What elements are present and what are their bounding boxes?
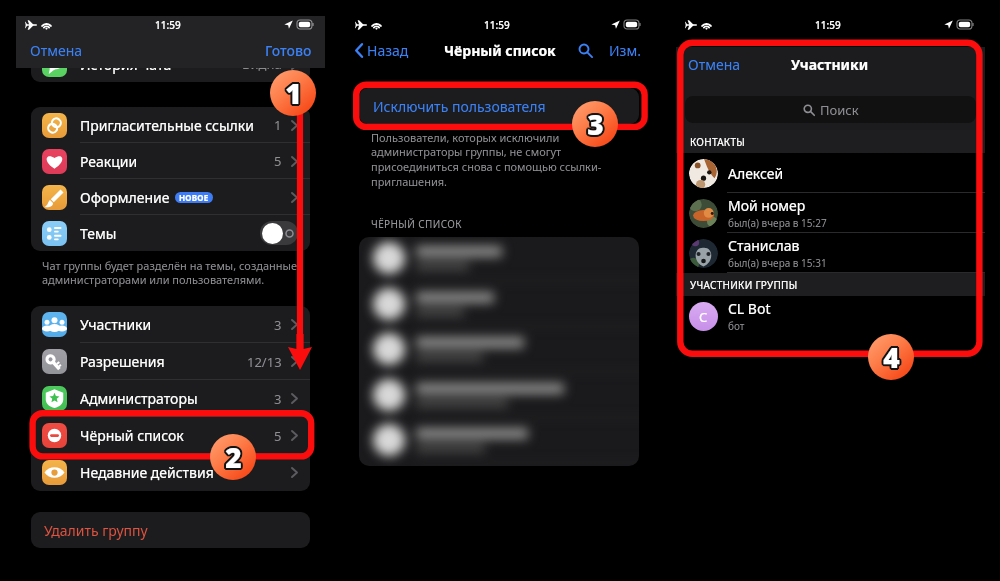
staticText: 1 bbox=[285, 75, 302, 113]
staticText: Станислав bbox=[728, 236, 800, 255]
staticText: 2 bbox=[223, 437, 240, 475]
staticText: КОНТАКТЫ bbox=[690, 135, 746, 149]
staticText: 4 bbox=[883, 337, 900, 375]
button[interactable]: Станислав bbox=[676, 233, 985, 273]
staticText: 4 bbox=[884, 339, 901, 377]
staticText: 1 bbox=[284, 74, 301, 112]
button[interactable]: Разрешения bbox=[31, 343, 310, 380]
button[interactable]: Чёрный список bbox=[31, 417, 310, 454]
staticText: Алексей bbox=[728, 164, 784, 183]
staticText: 1 bbox=[286, 75, 303, 113]
staticText: 3 bbox=[587, 103, 604, 141]
staticText: 3 bbox=[585, 104, 602, 142]
button[interactable]: История чата bbox=[31, 46, 310, 82]
staticText: 1 bbox=[287, 73, 304, 111]
staticText: 11:59 bbox=[815, 18, 841, 32]
staticText: 2 bbox=[224, 440, 241, 478]
staticText: 4 bbox=[883, 339, 900, 377]
staticText: 1 bbox=[285, 72, 302, 110]
staticText: Отмена bbox=[688, 55, 741, 74]
staticText: 1 bbox=[286, 76, 303, 114]
staticText: 1 bbox=[285, 74, 302, 112]
button[interactable]: Поиск bbox=[576, 41, 595, 60]
staticText: 2 bbox=[227, 438, 244, 476]
staticText: 3 bbox=[586, 104, 603, 142]
staticText: 4 bbox=[884, 340, 901, 378]
staticText: Участники bbox=[80, 315, 152, 334]
staticText: 1 bbox=[286, 73, 303, 111]
staticText: был(а) вчера в 15:31 bbox=[728, 256, 827, 270]
button[interactable]: Поиск bbox=[685, 96, 976, 123]
staticText: Темы bbox=[80, 224, 117, 243]
button[interactable]: Изм. bbox=[609, 41, 641, 60]
staticText: 3 bbox=[588, 107, 605, 145]
button[interactable]: Недавние действия bbox=[31, 454, 310, 491]
staticText: 3 bbox=[585, 105, 602, 143]
button[interactable]: Темы bbox=[31, 215, 310, 251]
button[interactable]: Назад bbox=[355, 41, 409, 60]
button[interactable]: C bbox=[676, 296, 985, 336]
staticText: 2 bbox=[226, 436, 243, 474]
staticText: 1 bbox=[283, 73, 300, 111]
staticText: Пригласительные ссылки bbox=[80, 116, 254, 135]
staticText: 2 bbox=[227, 437, 244, 475]
staticText: 3 bbox=[589, 105, 606, 143]
staticText: 4 bbox=[884, 338, 901, 376]
staticText: 4 bbox=[881, 337, 898, 375]
staticText: 11:59 bbox=[155, 18, 181, 32]
staticText: 3 bbox=[274, 390, 282, 408]
staticText: Поиск bbox=[820, 101, 859, 119]
staticText: 2 bbox=[225, 439, 242, 477]
staticText: 3 bbox=[586, 106, 603, 144]
staticText: 3 bbox=[587, 104, 604, 142]
staticText: НОВОЕ bbox=[179, 192, 209, 203]
staticText: CL Bot bbox=[728, 299, 771, 318]
button[interactable]: Удалить группу bbox=[31, 512, 310, 548]
button[interactable]: Администраторы bbox=[31, 380, 310, 417]
button[interactable]: Мой номер bbox=[676, 193, 985, 233]
staticText: бот bbox=[728, 319, 745, 333]
staticText: 3 bbox=[588, 105, 605, 143]
button[interactable] bbox=[260, 221, 298, 245]
staticText: 4 bbox=[881, 338, 898, 376]
staticText: 3 bbox=[586, 107, 603, 145]
staticText: 1 bbox=[284, 72, 301, 110]
staticText: 1 bbox=[274, 116, 282, 134]
staticText: 3 bbox=[588, 103, 605, 141]
button[interactable]: Пригласительные ссылки bbox=[31, 107, 310, 143]
staticText: 3 bbox=[587, 107, 604, 145]
staticText: Исключить пользователя bbox=[373, 97, 546, 116]
staticText: 3 bbox=[586, 105, 603, 143]
staticText: 1 bbox=[285, 73, 302, 111]
staticText: Участники bbox=[791, 55, 869, 74]
button[interactable]: Отмена bbox=[30, 41, 83, 60]
staticText: Изм. bbox=[609, 41, 641, 60]
staticText: 2 bbox=[224, 437, 241, 475]
button[interactable]: Исключить пользователя bbox=[359, 88, 639, 124]
staticText: 3 bbox=[589, 106, 606, 144]
staticText: 2 bbox=[223, 438, 240, 476]
staticText: 1 bbox=[286, 74, 303, 112]
staticText: 12/13 bbox=[247, 353, 282, 371]
staticText: 3 bbox=[585, 106, 602, 144]
staticText: 3 bbox=[589, 104, 606, 142]
button[interactable]: Оформление bbox=[31, 179, 310, 215]
staticText: 4 bbox=[884, 337, 901, 375]
staticText: 2 bbox=[223, 439, 240, 477]
button[interactable]: Отмена bbox=[688, 55, 741, 74]
button[interactable]: Реакции bbox=[31, 143, 310, 179]
staticText: 2 bbox=[224, 439, 241, 477]
staticText: Назад bbox=[367, 41, 409, 60]
button[interactable]: Алексей bbox=[676, 153, 985, 193]
button[interactable]: Участники bbox=[31, 306, 310, 343]
staticText: 4 bbox=[882, 336, 899, 374]
staticText: 1 bbox=[284, 76, 301, 114]
staticText: 3 bbox=[274, 316, 282, 334]
staticText: 2 bbox=[226, 438, 243, 476]
staticText: 1 bbox=[287, 75, 304, 113]
staticText: 3 bbox=[587, 105, 604, 143]
button[interactable]: Готово bbox=[265, 41, 312, 60]
staticText: 2 bbox=[224, 436, 241, 474]
staticText: Пользователи, которых исключили админист… bbox=[371, 130, 602, 190]
staticText: 5 bbox=[274, 152, 282, 170]
